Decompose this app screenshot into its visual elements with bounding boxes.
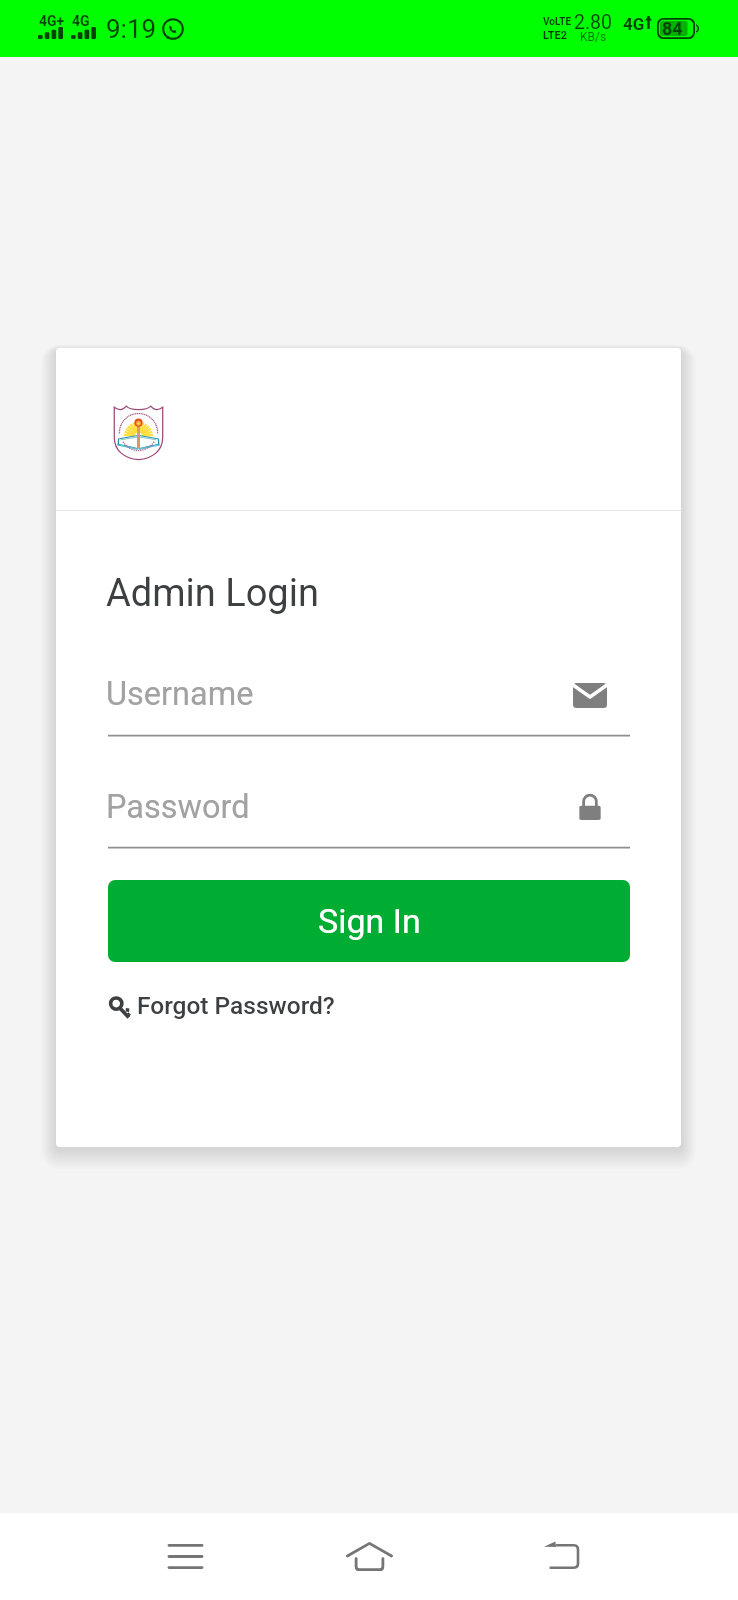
button[interactable]: Password (106, 779, 632, 851)
staticText: 84 (662, 18, 683, 39)
staticText: 2.80 (574, 11, 613, 34)
staticText: Password (106, 788, 250, 826)
staticText: 4G (72, 13, 90, 29)
staticText: LTE2 (543, 29, 568, 42)
button[interactable]: Home (329, 1513, 409, 1600)
staticText: 4G+ (39, 13, 65, 29)
staticText: Sign In (318, 901, 421, 941)
button[interactable]: Username (106, 666, 632, 738)
staticText: Forgot Password? (137, 991, 335, 1020)
button[interactable]: Recent apps (145, 1513, 225, 1600)
other: Password (577, 794, 603, 820)
staticText: VoLTE (543, 16, 572, 28)
button[interactable]: Sign In (108, 880, 630, 962)
staticText: 4G (623, 14, 645, 34)
other: School logo (110, 403, 167, 460)
other: Email (573, 683, 607, 708)
button[interactable]: Forgot Password? (106, 991, 335, 1020)
staticText: 9:19 (106, 14, 157, 44)
staticText: KB/s (580, 30, 607, 44)
other: WhatsApp (162, 18, 184, 40)
staticText: Admin Login (106, 571, 319, 616)
staticText: Username (106, 675, 254, 713)
button[interactable]: Back (521, 1513, 601, 1600)
